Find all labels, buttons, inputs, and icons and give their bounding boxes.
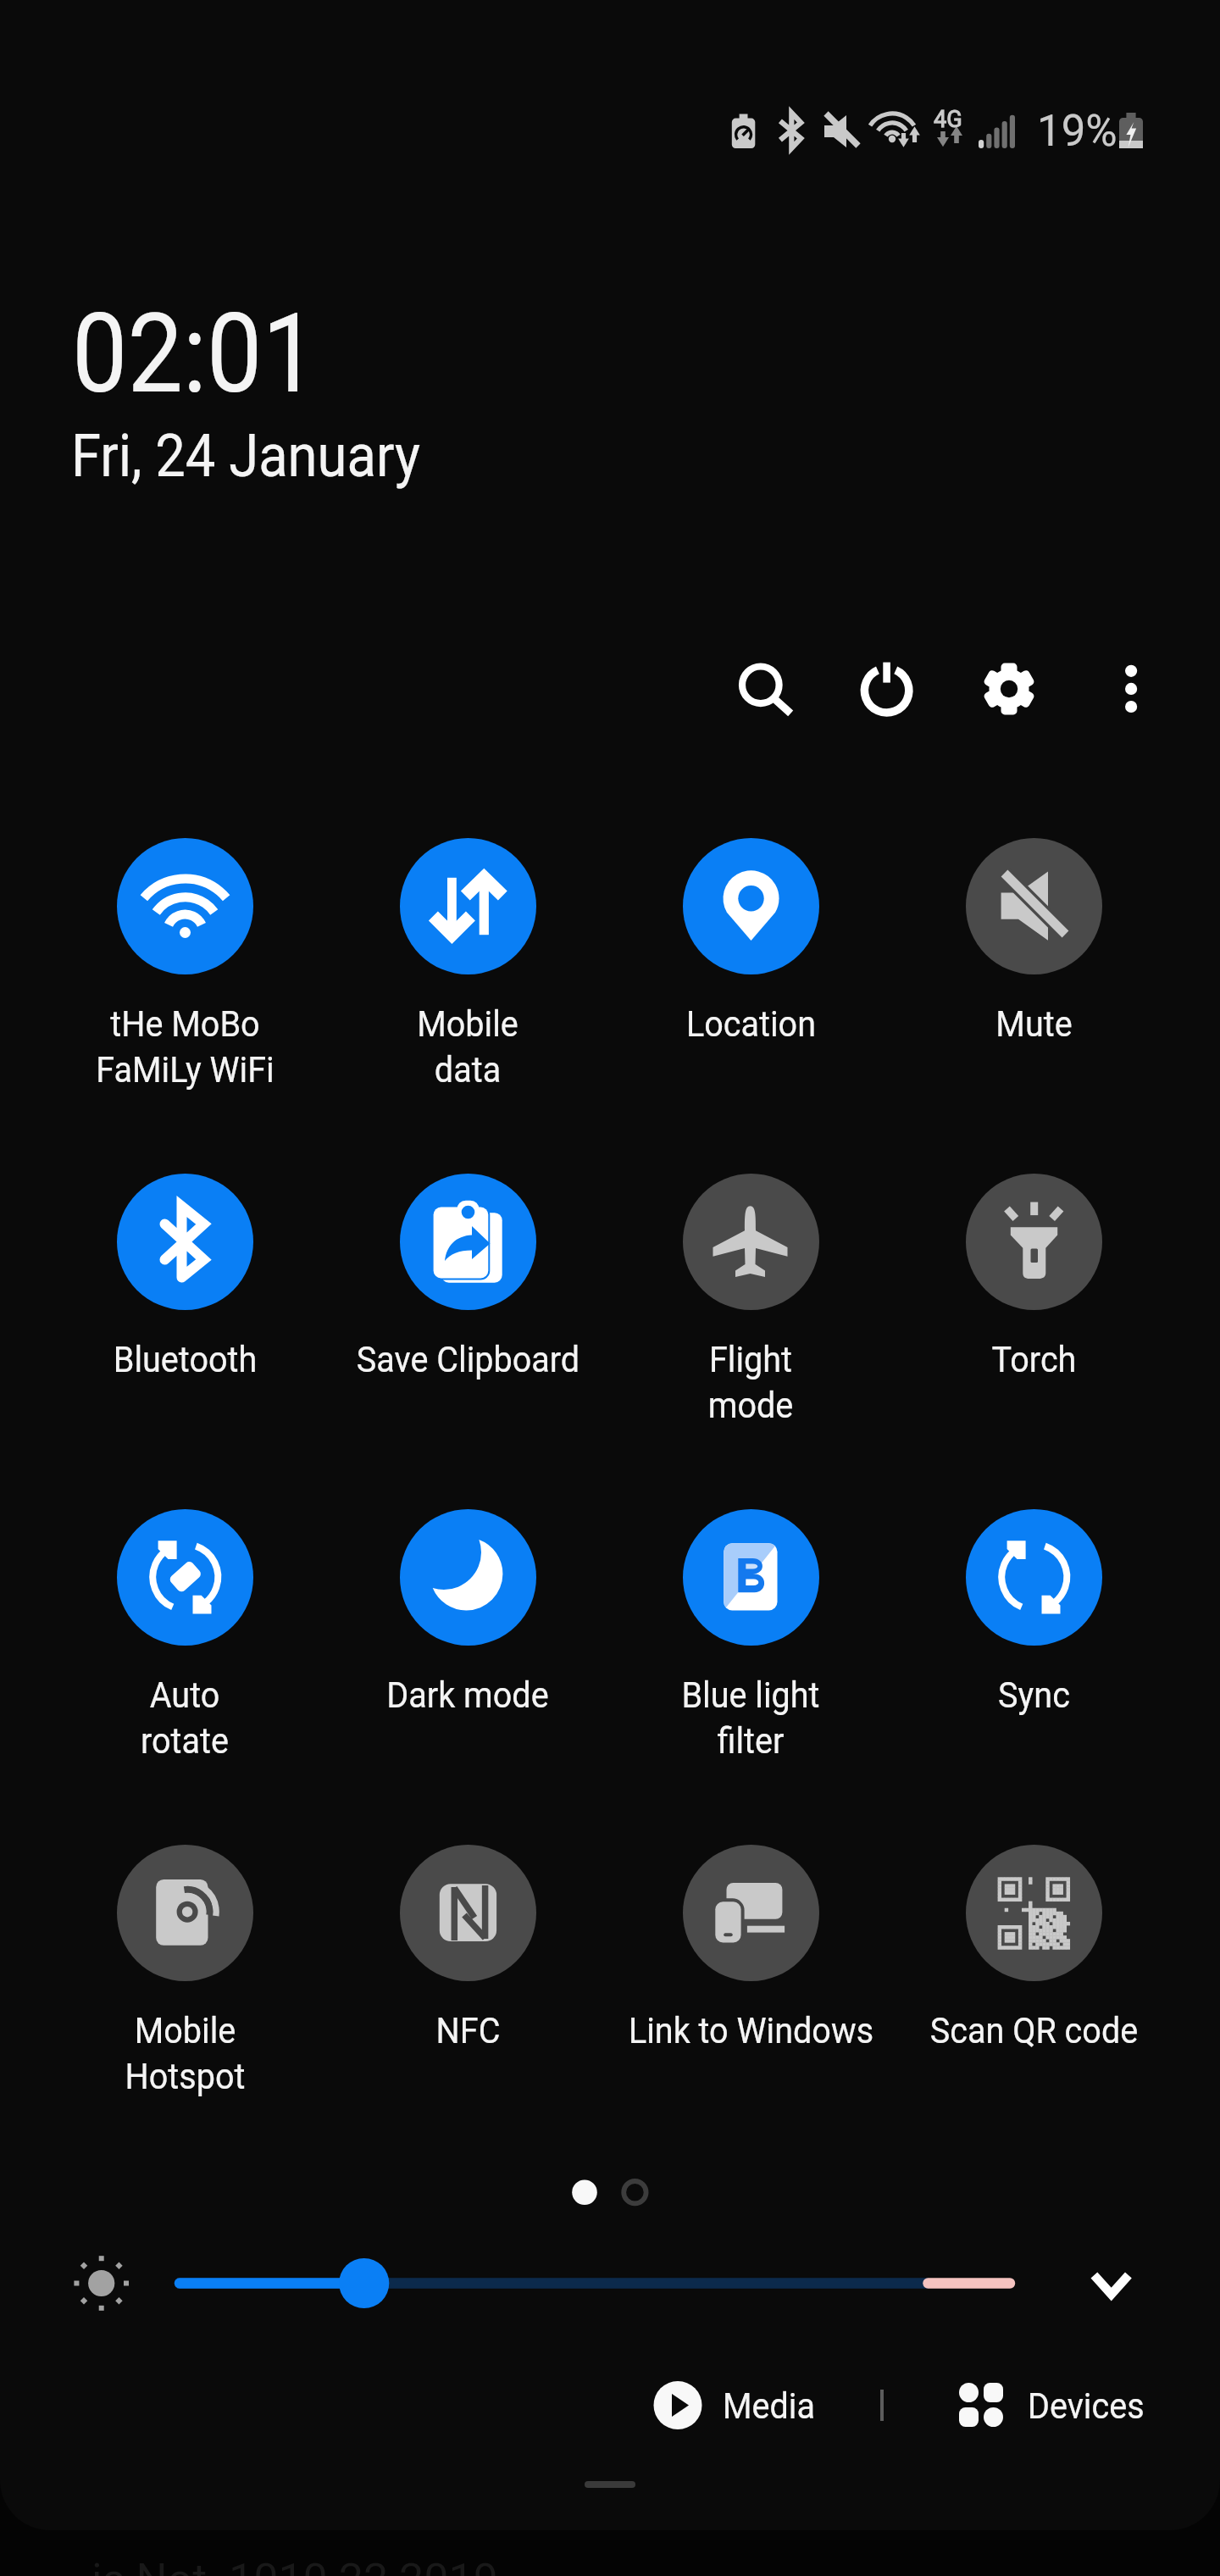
- staticText: 4G: [934, 106, 962, 133]
- staticText: Sync: [998, 1674, 1070, 1716]
- button[interactable]: Torch: [856, 1174, 1212, 1380]
- button[interactable]: Power off: [837, 638, 939, 740]
- staticText: Save Clipboard: [356, 1338, 580, 1380]
- staticText: Mobile Hotspot: [125, 2009, 246, 2097]
- button[interactable]: Scan QR code: [856, 1845, 1212, 2051]
- button[interactable]: Flight mode: [573, 1174, 929, 1426]
- button[interactable]: Bluetooth: [7, 1174, 363, 1380]
- button[interactable]: Mobile Hotspot: [7, 1845, 363, 2097]
- button[interactable]: tHe MoBo FaMiLy WiFi: [7, 838, 363, 1091]
- staticText: 02:01: [72, 289, 318, 419]
- staticText: Mobile data: [417, 1002, 518, 1091]
- staticText: Devices: [1028, 2384, 1145, 2427]
- button[interactable]: Expand quick settings: [1061, 2234, 1162, 2335]
- staticText: Flight mode: [708, 1338, 794, 1426]
- staticText: NFC: [436, 2009, 500, 2051]
- button[interactable]: NFC: [290, 1845, 646, 2051]
- staticText: Location: [686, 1002, 816, 1045]
- staticText: 19%: [1037, 106, 1117, 157]
- button[interactable]: Link to Windows: [573, 1845, 929, 2051]
- staticText: Link to Windows: [628, 2009, 874, 2051]
- button[interactable]: Media: [646, 2373, 823, 2439]
- staticText: Fri, 24 January: [71, 421, 421, 491]
- staticText: Bluetooth: [113, 1338, 257, 1380]
- button[interactable]: Auto rotate: [7, 1509, 363, 1762]
- button[interactable]: Dark mode: [290, 1509, 646, 1716]
- button[interactable]: Search: [714, 638, 816, 740]
- staticText: Dark mode: [387, 1674, 549, 1716]
- button[interactable]: Sync: [856, 1509, 1212, 1716]
- button[interactable]: Brightness: [51, 2237, 1051, 2330]
- staticText: is Not 1010 22 2019: [91, 2554, 498, 2576]
- staticText: Mute: [995, 1002, 1073, 1045]
- staticText: Scan QR code: [930, 2009, 1138, 2051]
- button[interactable]: Mobile data: [290, 838, 646, 1091]
- button[interactable]: Devices: [959, 2373, 1155, 2439]
- button[interactable]: Location: [573, 838, 929, 1045]
- button[interactable]: Settings: [958, 638, 1060, 740]
- staticText: Blue light filter: [681, 1674, 820, 1762]
- button[interactable]: Mute: [856, 838, 1212, 1045]
- button[interactable]: Save Clipboard: [290, 1174, 646, 1380]
- button[interactable]: More options: [1081, 638, 1183, 740]
- staticText: tHe MoBo FaMiLy WiFi: [96, 1002, 274, 1091]
- staticText: Auto rotate: [140, 1674, 229, 1762]
- button[interactable]: Blue light filter: [573, 1509, 929, 1762]
- staticText: Media: [723, 2384, 815, 2427]
- staticText: Torch: [992, 1338, 1077, 1380]
- button[interactable]: Page 1 of 2: [559, 2169, 661, 2217]
